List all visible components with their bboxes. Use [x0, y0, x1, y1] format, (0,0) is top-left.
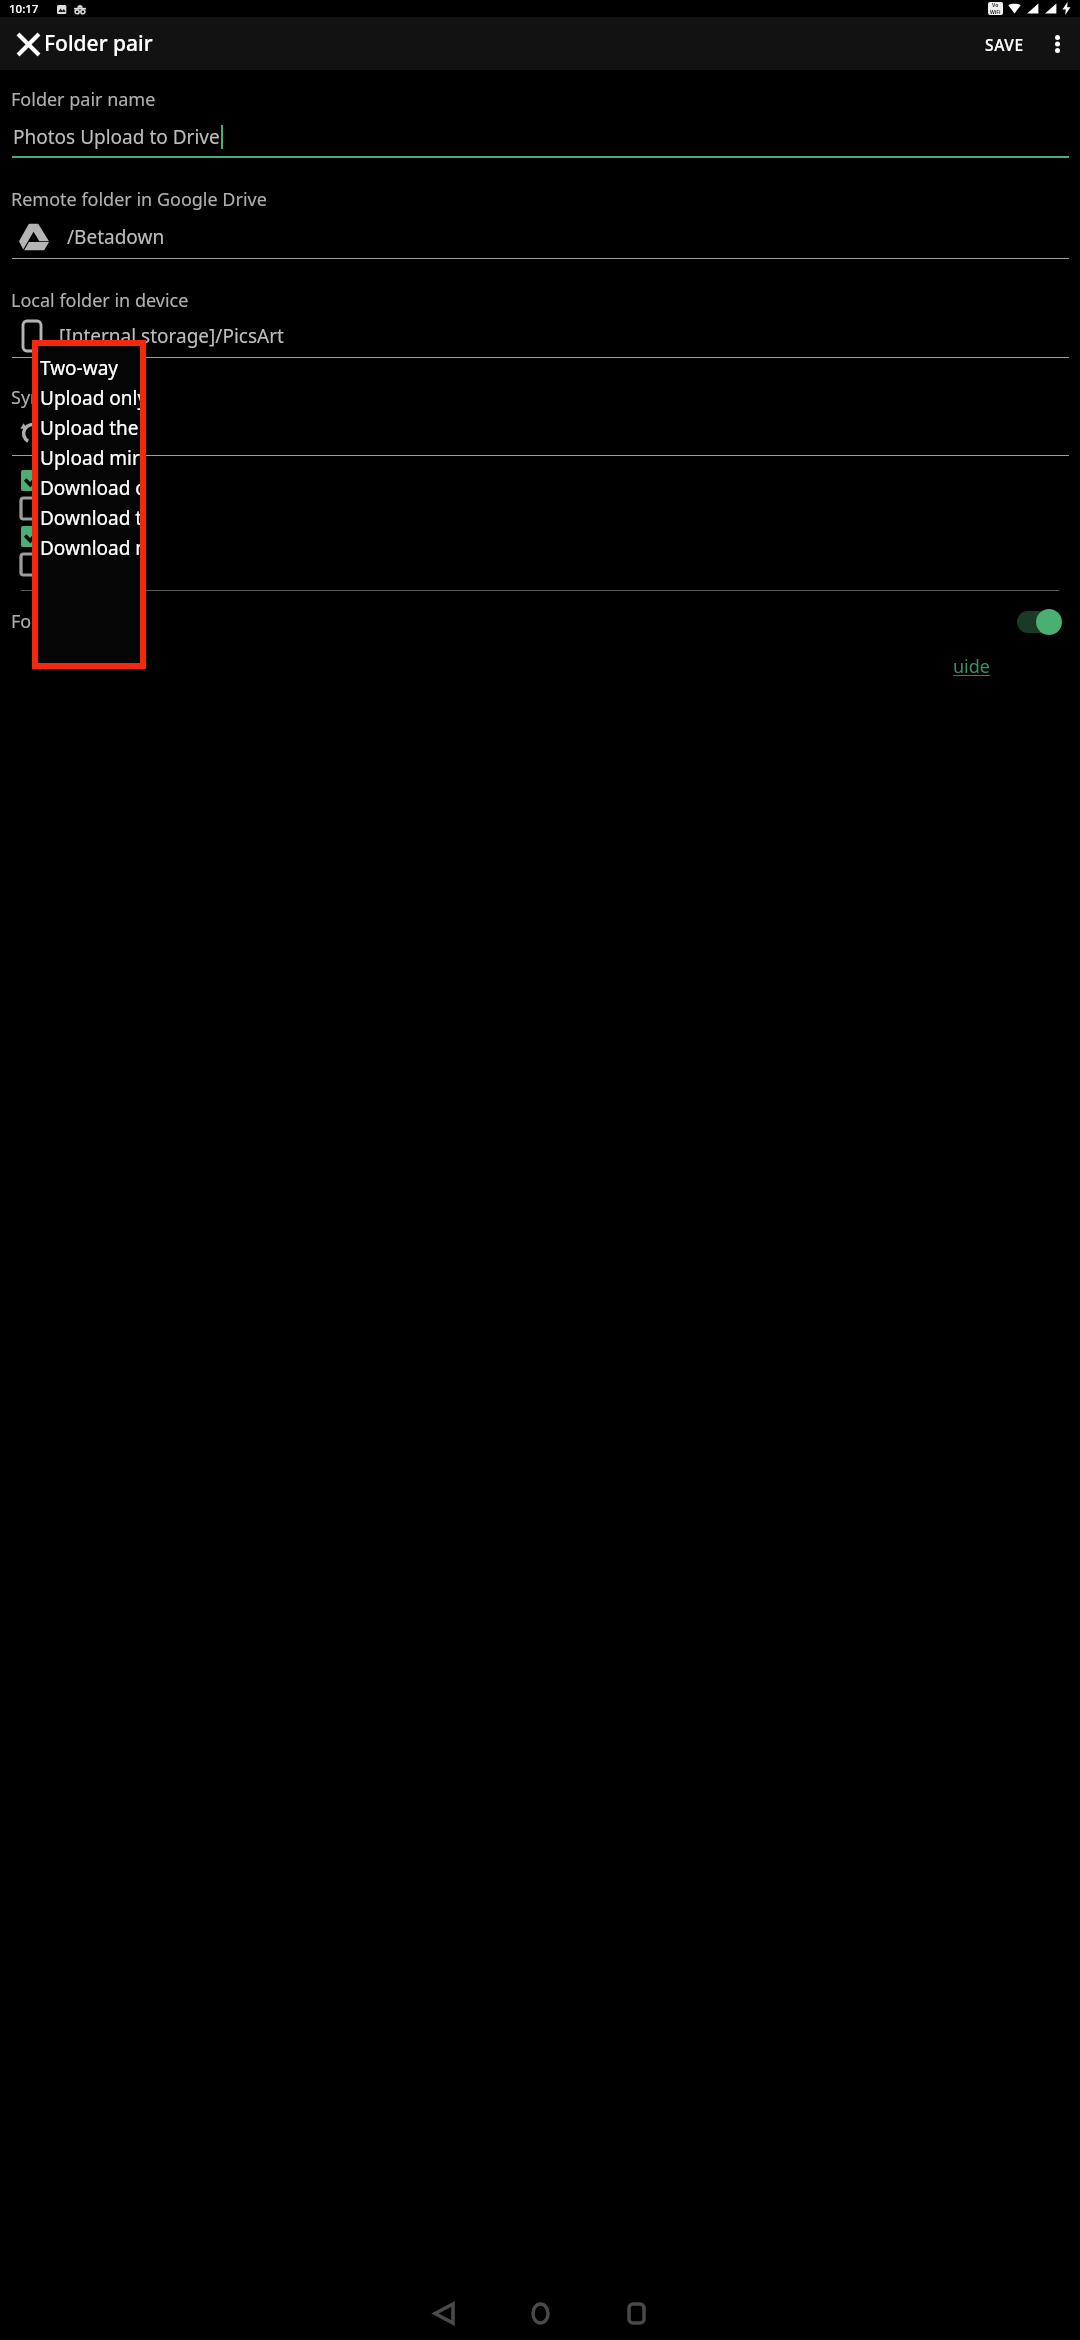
button[interactable]: SAVE	[975, 22, 1034, 67]
button[interactable]	[11, 554, 1069, 575]
button[interactable]: [Internal storage]/PicsArt	[11, 321, 1069, 351]
staticText: Download then delete	[40, 505, 143, 531]
staticText: Two-way	[40, 355, 119, 381]
button[interactable]: Upload then delete	[35, 413, 143, 443]
button[interactable]	[11, 498, 1069, 519]
button[interactable]: More options	[1034, 21, 1080, 67]
staticText: Photos Upload to Drive	[13, 124, 220, 150]
button[interactable]: Home	[512, 2287, 568, 2340]
staticText: Upload mirror	[40, 445, 143, 471]
staticText: Local folder in device	[11, 288, 189, 313]
button[interactable]	[1017, 610, 1061, 634]
staticText: [Internal storage]/PicsArt	[59, 323, 284, 349]
staticText: Sync method	[11, 385, 122, 410]
staticText: Download mirror	[40, 535, 143, 561]
staticText: SAVE	[985, 34, 1024, 55]
button[interactable]: Download then delete	[35, 503, 143, 533]
button[interactable]: Close	[4, 20, 52, 68]
staticText: Remote folder in Google Drive	[11, 187, 267, 212]
staticText: 10:17	[9, 1, 39, 17]
button[interactable]: Recents	[608, 2287, 664, 2340]
staticText: Folder	[11, 609, 65, 634]
button[interactable]	[11, 526, 1069, 547]
button[interactable]: Upload only	[35, 383, 143, 413]
staticText: /Betadown	[67, 224, 165, 250]
button[interactable]: Download only	[35, 473, 143, 503]
button[interactable]: Two-way	[35, 353, 143, 383]
staticText: WiFi	[990, 9, 1001, 15]
button[interactable]: Back	[416, 2287, 472, 2340]
button[interactable]: /Betadown	[11, 222, 1069, 252]
staticText: Folder pair name	[11, 87, 156, 112]
staticText: Vo	[992, 2, 999, 9]
staticText: Download only	[40, 475, 143, 501]
button[interactable]: Download mirror	[35, 533, 143, 563]
staticText: Upload only	[40, 385, 143, 411]
button[interactable]	[11, 420, 1069, 447]
button[interactable]: uide	[953, 654, 990, 679]
staticText: Folder pair	[44, 29, 153, 58]
button[interactable]	[11, 470, 1069, 491]
staticText: Upload then delete	[40, 415, 143, 441]
button[interactable]: Upload mirror	[35, 443, 143, 473]
button[interactable]: Folder	[11, 609, 1069, 634]
